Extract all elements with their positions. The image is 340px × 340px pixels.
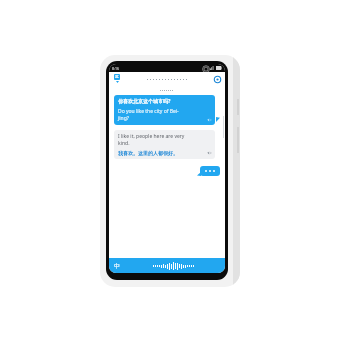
staticText: 中 (114, 262, 120, 270)
staticText: Do you like the city of Bei- (118, 108, 179, 115)
staticText: kind. (118, 140, 130, 147)
staticText: 8:16 (112, 66, 119, 71)
staticText: jing? (118, 115, 129, 122)
staticText: 英 (115, 75, 119, 79)
button[interactable] (200, 166, 220, 176)
staticText: 我喜欢。这里的人都很好。 (118, 150, 178, 156)
button[interactable]: I like it, people here are very (114, 130, 215, 159)
staticText: 你喜欢北京这个城市吗? (118, 98, 171, 105)
button[interactable]: Language (112, 74, 122, 85)
button[interactable]: Hold to speak (109, 258, 225, 273)
button[interactable]: Settings (213, 75, 222, 84)
staticText: I like it, people here are very (118, 133, 185, 140)
button[interactable]: 你喜欢北京这个城市吗? (114, 95, 215, 125)
